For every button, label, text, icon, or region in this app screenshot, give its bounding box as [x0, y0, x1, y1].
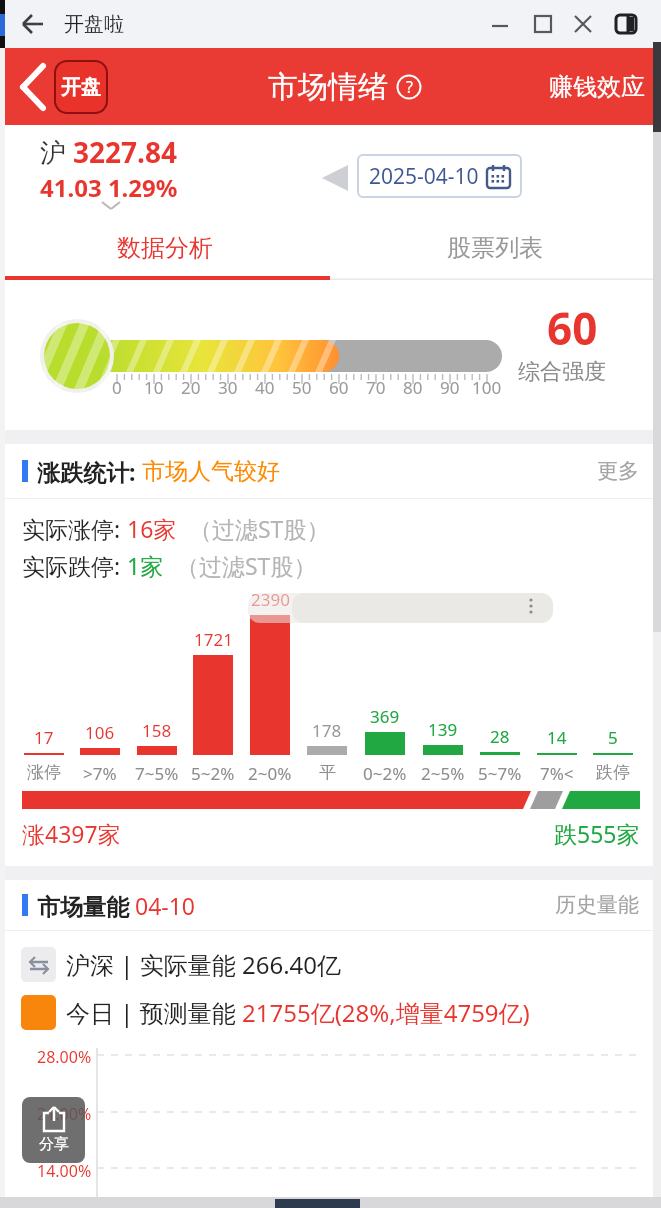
staticText: 16家 — [127, 513, 177, 544]
staticText: 涨4397家 — [22, 818, 121, 849]
staticText: 5~2% — [191, 762, 235, 785]
staticText: 20 — [181, 376, 201, 399]
staticText: 41.03 1.29% — [40, 171, 178, 204]
staticText: 跌555家 — [554, 818, 640, 849]
staticText: 70 — [366, 376, 386, 399]
staticText: 1721 — [194, 628, 233, 651]
staticText: （过滤ST股） — [177, 513, 330, 544]
staticText: 5 — [608, 726, 618, 749]
staticText: 100 — [472, 376, 502, 399]
button[interactable]: 股票列表 — [330, 215, 660, 280]
staticText: 开盘啦 — [64, 12, 124, 37]
staticText: 28 — [490, 725, 510, 748]
staticText: 14 — [547, 726, 567, 749]
staticText: 市场人气较好 — [142, 457, 280, 486]
staticText: 分享 — [39, 1135, 69, 1154]
staticText: 80 — [403, 376, 423, 399]
staticText: 21755亿(28%,增量4759亿) — [242, 996, 530, 1029]
staticText: 开盘 — [61, 75, 101, 100]
button[interactable]: 开盘 — [54, 60, 108, 114]
staticText: 178 — [312, 719, 342, 742]
staticText: 139 — [428, 718, 458, 741]
staticText: 28.00% — [37, 1046, 92, 1068]
staticText: 历史量能 — [555, 892, 639, 918]
staticText: 40 — [255, 376, 275, 399]
staticText: （过滤ST股） — [164, 550, 317, 581]
staticText: 60 — [329, 376, 349, 399]
staticText: 0 — [112, 376, 122, 399]
button[interactable] — [320, 165, 350, 195]
button[interactable]: 涨跌统计: — [22, 444, 639, 498]
staticText: 30 — [218, 376, 238, 399]
button[interactable]: 数据分析 — [0, 215, 330, 280]
button[interactable]: 分享 — [22, 1097, 85, 1163]
staticText: 实际涨停: — [22, 513, 127, 544]
staticText: 更多 — [597, 458, 639, 484]
button[interactable]: 市场量能 — [22, 880, 639, 930]
staticText: >7% — [83, 762, 117, 785]
staticText: 60 — [547, 298, 598, 358]
staticText: 股票列表 — [447, 233, 543, 263]
button[interactable]: 沪 — [40, 133, 178, 204]
staticText: 沪 — [40, 134, 73, 170]
staticText: 实际跌停: — [22, 550, 127, 581]
staticText: 今日 | 预测量能 — [66, 996, 242, 1029]
staticText: 369 — [370, 705, 400, 728]
staticText: ? — [406, 76, 413, 98]
staticText: 2390 — [251, 588, 290, 611]
staticText: 17 — [34, 726, 54, 749]
staticText: 14.00% — [37, 1160, 92, 1182]
staticText: 2~0% — [248, 762, 292, 785]
staticText: 平 — [319, 762, 336, 783]
staticText: 5~7% — [478, 762, 522, 785]
staticText: 158 — [142, 719, 172, 742]
staticText: 涨跌统计: — [37, 456, 142, 487]
staticText: 跌停 — [596, 762, 630, 783]
staticText: 涨停 — [27, 762, 61, 783]
staticText: 1家 — [127, 550, 164, 581]
button[interactable] — [10, 0, 58, 48]
staticText: 04-10 — [135, 890, 196, 921]
staticText: 3227.84 — [73, 133, 177, 171]
button[interactable]: 2025-04-10 — [358, 155, 521, 197]
staticText: 0~2% — [363, 762, 407, 785]
staticText: 市场量能 — [37, 890, 135, 921]
staticText: 数据分析 — [117, 233, 213, 263]
staticText: 106 — [85, 721, 115, 744]
staticText: 21.00% — [37, 1103, 92, 1125]
staticText: 市场情绪 — [268, 68, 388, 106]
staticText: 50 — [292, 376, 312, 399]
staticText: 2~5% — [421, 762, 465, 785]
staticText: 7%< — [540, 762, 574, 785]
staticText: 10 — [144, 376, 164, 399]
staticText: 7~5% — [135, 762, 179, 785]
staticText: 90 — [440, 376, 460, 399]
staticText: 2025-04-10 — [369, 162, 479, 191]
staticText: 沪深 | 实际量能 266.40亿 — [66, 948, 342, 981]
button[interactable]: 赚钱效应 — [549, 72, 645, 102]
button[interactable] — [10, 62, 60, 112]
staticText: 综合强度 — [518, 358, 606, 386]
